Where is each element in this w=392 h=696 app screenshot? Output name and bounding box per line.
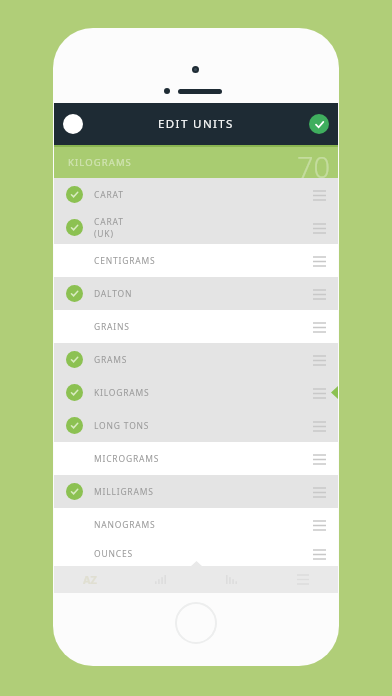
button[interactable]: GRAMS xyxy=(54,343,338,376)
staticText: CARAT xyxy=(94,189,124,201)
button[interactable]: Reorder CARAT xyxy=(311,221,327,235)
button[interactable]: OUNCES xyxy=(54,541,338,566)
button[interactable]: Reorder GRAMS xyxy=(311,353,327,367)
button[interactable]: Reorder MILLIGRAMS xyxy=(311,485,327,499)
button[interactable]: CARAT xyxy=(54,178,338,211)
button[interactable]: Reorder MICROGRAMS xyxy=(311,452,327,466)
button[interactable]: MICROGRAMS xyxy=(54,442,338,475)
staticText: AZ xyxy=(83,572,97,587)
staticText: KILOGRAMS xyxy=(68,156,132,169)
staticText: DALTON xyxy=(94,288,133,300)
staticText: (UK) xyxy=(94,228,114,240)
button[interactable]: Reorder LONG TONS xyxy=(311,419,327,433)
button[interactable]: KILOGRAMS xyxy=(54,376,338,409)
staticText: GRAMS xyxy=(94,354,128,366)
button[interactable]: Reorder GRAINS xyxy=(311,320,327,334)
staticText: CARAT xyxy=(94,216,124,228)
button[interactable]: Reorder DALTON xyxy=(311,287,327,301)
button[interactable]: Reorder CARAT xyxy=(311,188,327,202)
button[interactable]: Close xyxy=(63,114,83,134)
staticText: LONG TONS xyxy=(94,420,150,432)
button[interactable]: GRAINS xyxy=(54,310,338,343)
staticText: CENTIGRAMS xyxy=(94,255,156,267)
button[interactable]: KILOGRAMS xyxy=(54,147,338,178)
staticText: KILOGRAMS xyxy=(94,387,150,399)
button[interactable]: Confirm xyxy=(309,114,329,134)
button[interactable]: NANOGRAMS xyxy=(54,508,338,541)
button[interactable]: Reorder NANOGRAMS xyxy=(311,518,327,532)
staticText: GRAINS xyxy=(94,321,130,333)
staticText: OUNCES xyxy=(94,548,133,560)
staticText: NANOGRAMS xyxy=(94,519,156,531)
button[interactable]: CARAT xyxy=(54,211,338,244)
button[interactable]: DALTON xyxy=(54,277,338,310)
staticText: EDIT UNITS xyxy=(158,116,234,132)
button[interactable]: CENTIGRAMS xyxy=(54,244,338,277)
button[interactable]: Reorder KILOGRAMS xyxy=(311,386,327,400)
button[interactable]: LONG TONS xyxy=(54,409,338,442)
button[interactable]: Reorder CENTIGRAMS xyxy=(311,254,327,268)
button[interactable]: Sort alphabetically xyxy=(54,566,125,593)
button[interactable]: MILLIGRAMS xyxy=(54,475,338,508)
button[interactable]: Reorder OUNCES xyxy=(311,547,327,561)
staticText: MICROGRAMS xyxy=(94,453,160,465)
staticText: MILLIGRAMS xyxy=(94,486,154,498)
staticText: 70 xyxy=(297,147,331,178)
